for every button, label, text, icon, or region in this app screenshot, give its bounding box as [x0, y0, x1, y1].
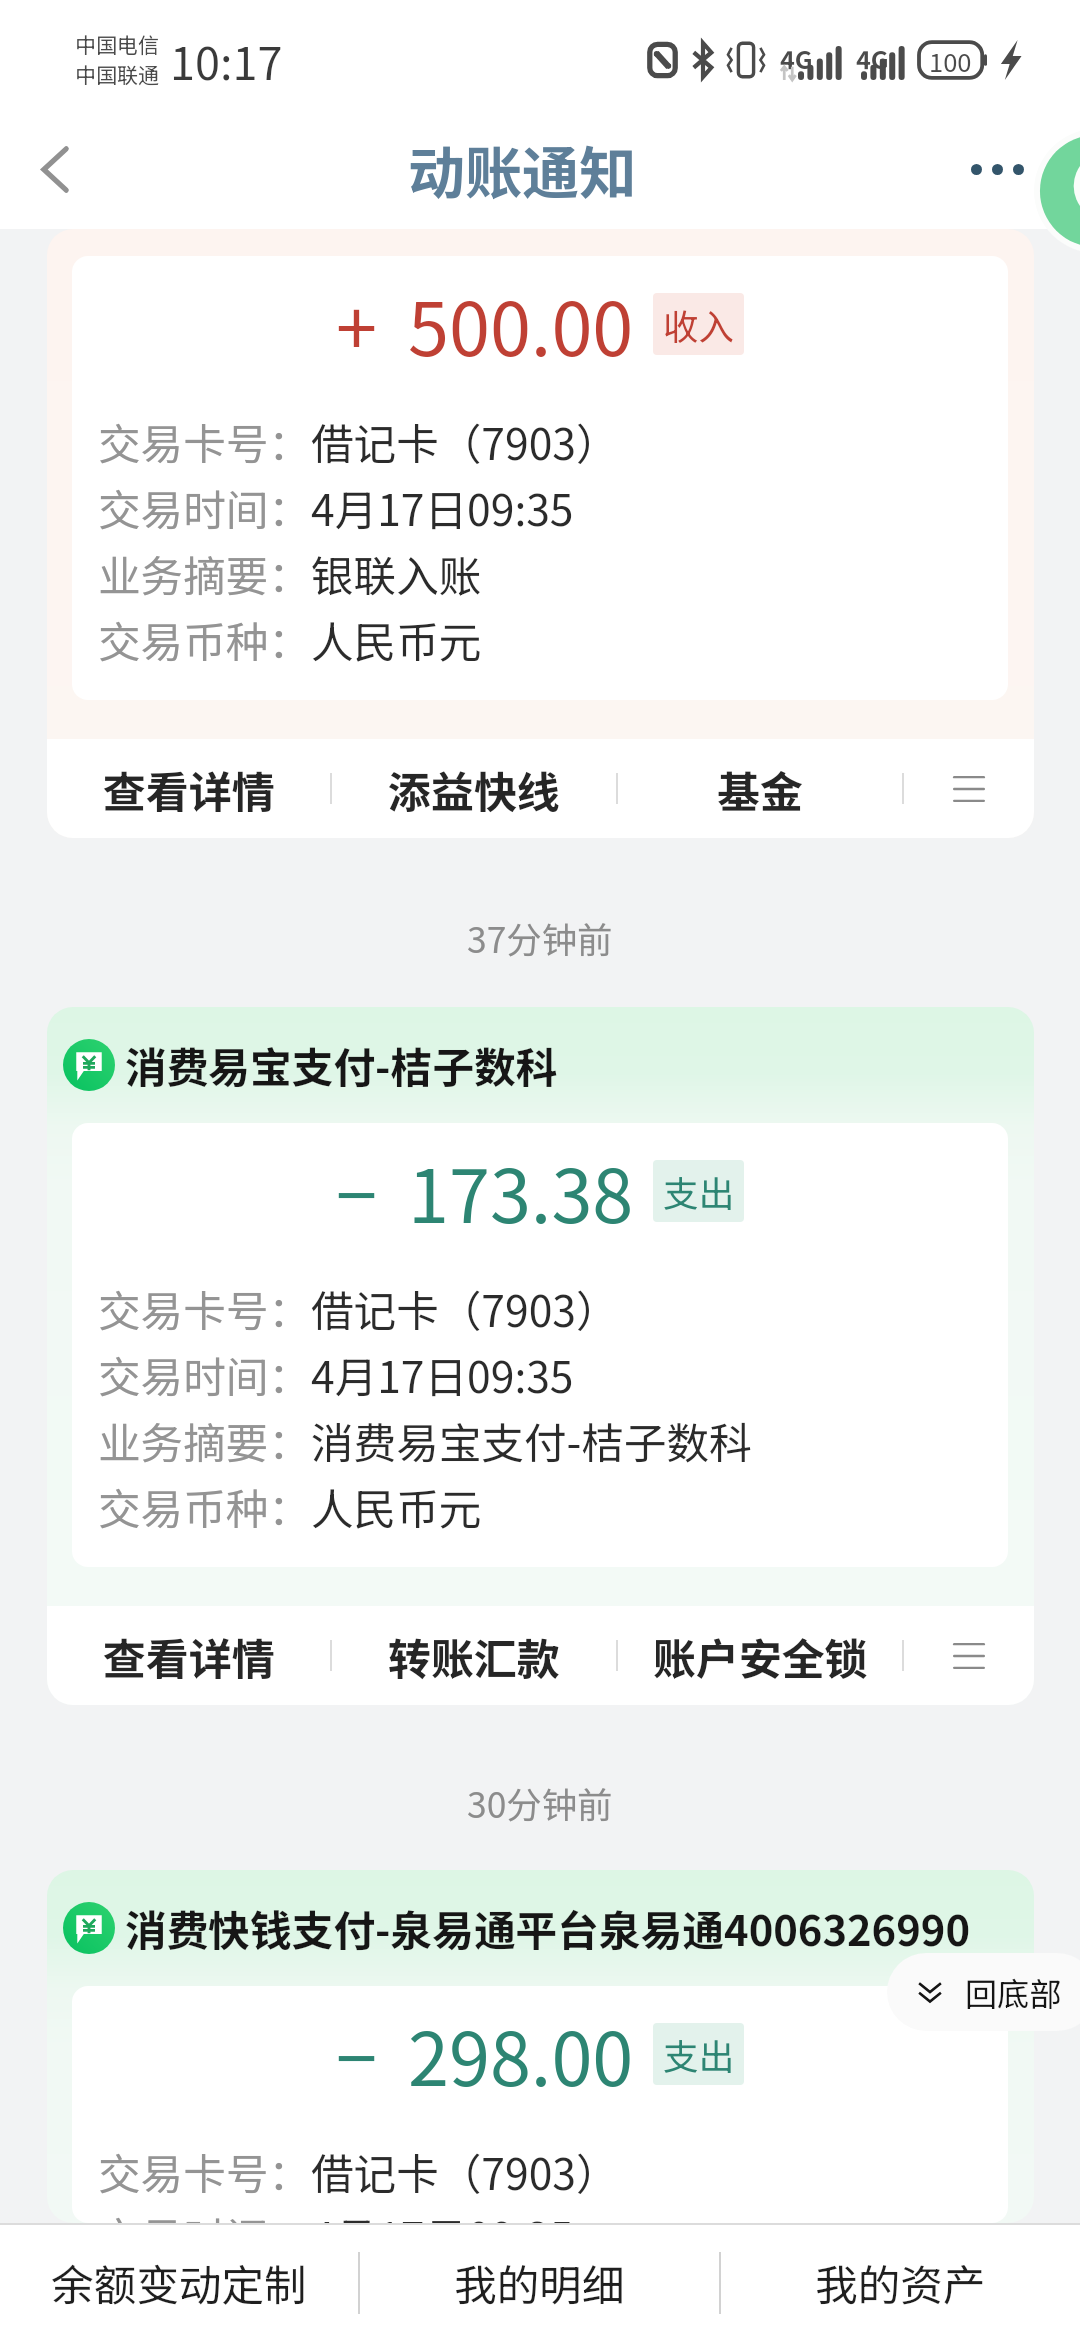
staticText: 交易时间：	[98, 477, 311, 539]
button[interactable]: 消费易宝支付-桔子数科	[47, 1007, 1034, 1705]
staticText: 100	[929, 42, 972, 79]
button[interactable]: +	[47, 229, 1034, 838]
staticText: 我的资产	[815, 2252, 986, 2314]
button[interactable]: 回底部	[887, 1953, 1080, 2031]
staticText: 500.00	[408, 270, 634, 377]
staticText: 交易卡号：	[98, 411, 311, 473]
button[interactable]: 我的资产	[721, 2225, 1080, 2340]
staticText: 4月17日09:35	[311, 2205, 574, 2223]
staticText: 查看详情	[103, 758, 275, 820]
staticText: −	[336, 1137, 377, 1244]
staticText: 借记卡（7903）	[311, 2141, 619, 2203]
staticText: 298.00	[408, 2000, 634, 2107]
staticText: 37分钟前	[467, 912, 613, 963]
button[interactable]: Customer service chat	[1034, 129, 1080, 253]
staticText: 收入	[663, 299, 734, 350]
button[interactable]: More actions	[904, 739, 1034, 838]
staticText: 动账通知	[408, 128, 636, 211]
staticText: 支出	[663, 2029, 734, 2080]
button[interactable]: Back	[0, 110, 110, 229]
staticText: 余额变动定制	[51, 2252, 307, 2314]
staticText: 我的明细	[454, 2252, 625, 2314]
button[interactable]: 查看详情	[47, 739, 330, 838]
staticText: 4G	[856, 40, 889, 76]
staticText: 4G	[780, 40, 813, 76]
staticText: 4月17日09:35	[311, 1344, 574, 1406]
staticText: 查看详情	[103, 1625, 275, 1687]
staticText: 转账汇款	[388, 1625, 560, 1687]
button[interactable]: 基金	[618, 739, 902, 838]
staticText: 基金	[717, 758, 803, 820]
button[interactable]: More actions	[904, 1606, 1034, 1705]
staticText: 回底部	[965, 1969, 1062, 2015]
staticText: 业务摘要：	[98, 1410, 311, 1472]
staticText: 交易卡号：	[98, 2141, 311, 2203]
staticText: 10:17	[170, 28, 283, 93]
staticText: 交易时间：	[98, 1344, 311, 1406]
button[interactable]: 查看详情	[47, 1606, 330, 1705]
staticText: 借记卡（7903）	[311, 1278, 619, 1340]
staticText: −	[336, 2000, 377, 2107]
staticText: 消费快钱支付-泉易通平台泉易通4006326990	[125, 1898, 971, 1958]
staticText: 交易币种：	[98, 609, 311, 671]
button[interactable]: 余额变动定制	[0, 2225, 358, 2340]
staticText: 人民币元	[311, 609, 482, 671]
staticText: 借记卡（7903）	[311, 411, 619, 473]
staticText: 中国电信	[75, 29, 159, 59]
staticText: 中国联通	[75, 59, 159, 89]
staticText: 173.38	[408, 1137, 634, 1244]
button[interactable]: 我的明细	[360, 2225, 719, 2340]
staticText: 4月17日09:35	[311, 477, 574, 539]
staticText: 消费易宝支付-桔子数科	[311, 1410, 752, 1472]
button[interactable]: 添益快线	[332, 739, 616, 838]
staticText: 支出	[663, 1166, 734, 1217]
staticText: 添益快线	[388, 758, 560, 820]
staticText: +	[336, 270, 377, 377]
staticText: 交易币种：	[98, 1476, 311, 1538]
staticText: 银联入账	[311, 543, 482, 605]
staticText: 消费易宝支付-桔子数科	[125, 1035, 558, 1095]
staticText: 交易卡号：	[98, 1278, 311, 1340]
button[interactable]: 消费快钱支付-泉易通平台泉易通4006326990	[47, 1870, 1034, 2223]
staticText: 30分钟前	[467, 1777, 613, 1828]
staticText: 人民币元	[311, 1476, 482, 1538]
button[interactable]: More options	[950, 110, 1080, 229]
staticText: 账户安全锁	[653, 1625, 868, 1687]
staticText: 交易时间：	[98, 2205, 311, 2223]
button[interactable]: 转账汇款	[332, 1606, 616, 1705]
staticText: 业务摘要：	[98, 543, 311, 605]
button[interactable]: 账户安全锁	[618, 1606, 902, 1705]
